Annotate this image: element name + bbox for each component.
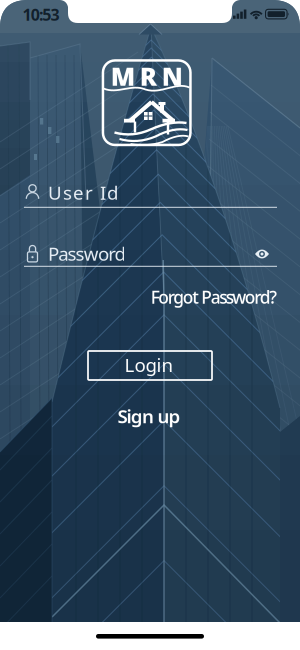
staticText: User Id <box>48 180 118 205</box>
button[interactable]: Login <box>86 349 214 382</box>
button[interactable]: Show password <box>250 244 274 264</box>
button[interactable]: Forgot Password? <box>151 285 277 308</box>
staticText: MRN <box>111 59 183 93</box>
button[interactable]: Sign up <box>117 404 181 428</box>
staticText: Password <box>48 241 125 266</box>
button[interactable]: User Id <box>20 178 280 212</box>
staticText: Forgot Password? <box>151 285 277 308</box>
staticText: Sign up <box>117 404 181 428</box>
staticText: Login <box>124 352 173 377</box>
staticText: 10:53 <box>23 4 59 25</box>
button[interactable]: Password <box>20 235 280 271</box>
